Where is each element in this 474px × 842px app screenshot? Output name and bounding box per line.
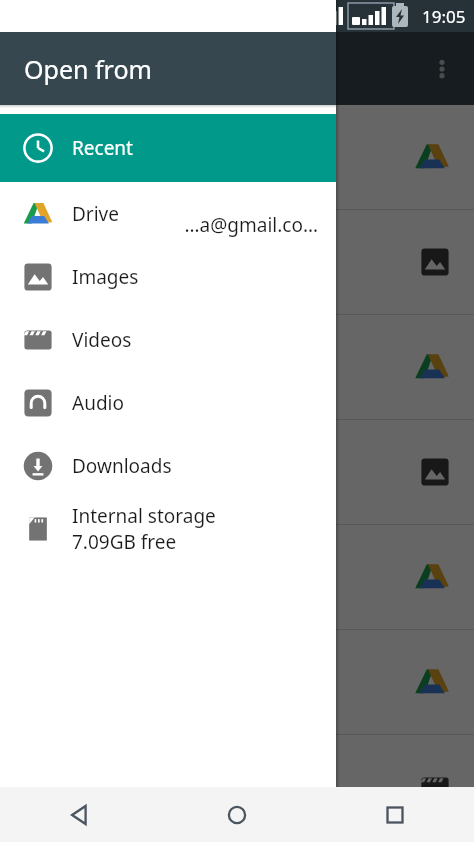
button[interactable]: Hello Android [0, 315, 474, 419]
staticText: Recent [72, 135, 133, 161]
staticText: Videos [72, 327, 132, 353]
button[interactable]: Screenshot_2016 [0, 210, 474, 314]
button[interactable]: Sam Parker's team [0, 105, 474, 209]
staticText: Project notes [22, 562, 402, 592]
button[interactable]: Videos [0, 308, 336, 371]
button[interactable]: Clip video [0, 735, 474, 839]
staticText: 7.09GB free [72, 529, 177, 555]
button[interactable]: Recent [0, 114, 336, 182]
staticText: Screenshot_2016 [22, 247, 408, 277]
staticText: Images [72, 264, 139, 290]
staticText: Downloads [72, 453, 172, 479]
staticText: Drive [72, 201, 119, 227]
button[interactable]: More options [418, 45, 466, 93]
button[interactable]: Images [0, 245, 336, 308]
staticText: 19:05 [422, 5, 466, 28]
staticText: Clip video [22, 772, 408, 802]
staticText: Audio [72, 390, 124, 416]
staticText: …a@gmail.co… [184, 212, 318, 238]
button[interactable]: Internal storage [0, 497, 336, 560]
button[interactable]: Recents [316, 787, 474, 842]
staticText: Internal storage [72, 503, 216, 529]
button[interactable]: Design review [0, 630, 474, 734]
staticText: Hello Android [22, 352, 402, 382]
staticText: Design review [22, 667, 402, 697]
button[interactable]: Downloads [0, 434, 336, 497]
staticText: Sam Parker's team [22, 142, 402, 172]
button[interactable]: Back [0, 787, 158, 842]
button[interactable]: Project notes [0, 525, 474, 629]
button[interactable]: Audio [0, 371, 336, 434]
staticText: Screenshot_2015 [22, 457, 408, 487]
button[interactable]: Screenshot_2015 [0, 420, 474, 524]
button[interactable]: Home [158, 787, 316, 842]
button[interactable]: Drive [0, 182, 336, 245]
staticText: Open from [24, 52, 152, 86]
